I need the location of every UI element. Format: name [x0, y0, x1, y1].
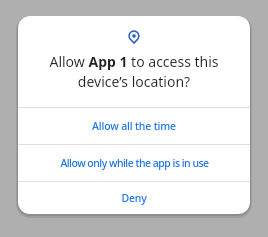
staticText: Deny: [121, 191, 147, 205]
staticText: Allow only while the app is in use: [60, 156, 209, 170]
staticText: Allow App 1 to access this device’s loca…: [18, 52, 250, 91]
staticText: Allow all the time: [92, 119, 176, 133]
button[interactable]: Allow only while the app is in use: [18, 145, 250, 181]
button[interactable]: Deny: [18, 182, 250, 213]
button[interactable]: Allow all the time: [18, 108, 250, 144]
